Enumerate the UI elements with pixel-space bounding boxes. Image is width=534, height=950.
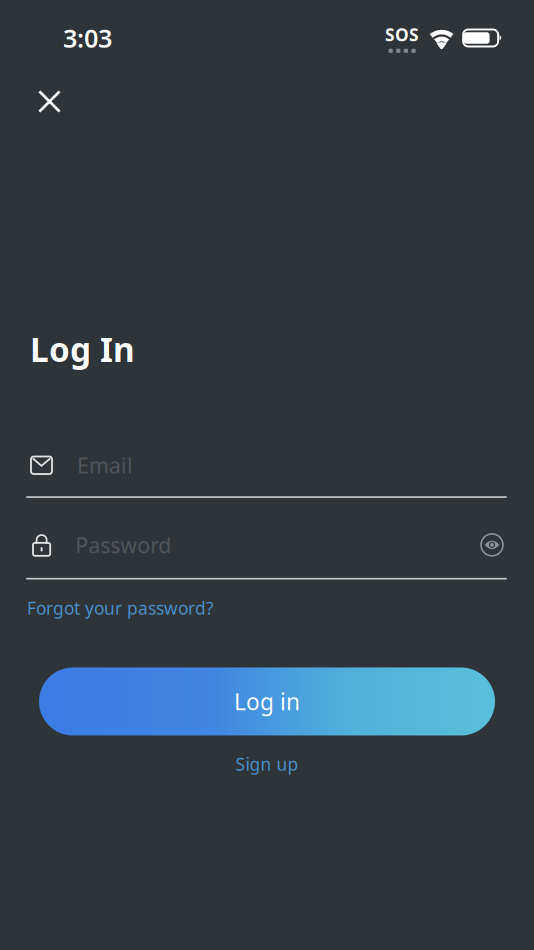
button[interactable]: Log in [39,667,495,735]
staticText: SOS [385,23,419,46]
staticText: Password [75,531,171,559]
staticText: 3:03 [63,21,112,55]
staticText: Sign up [235,752,298,775]
button[interactable]: Close [24,76,75,127]
button[interactable]: Forgot your password? [27,589,214,626]
staticText: Email [77,451,133,479]
staticText: Log In [30,327,135,371]
button[interactable]: Sign up [0,746,534,781]
button[interactable]: Show password [474,527,510,563]
staticText: Log in [234,686,300,716]
staticText: Forgot your password? [27,596,214,619]
